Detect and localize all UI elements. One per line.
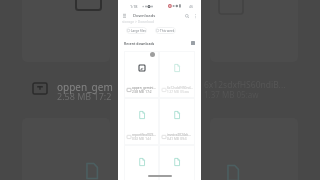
staticText: 0.92 MB 14:1 [132,137,152,141]
button[interactable]: This week [155,27,176,34]
button[interactable]: reportfinal0232... [124,98,159,145]
button[interactable]: notesdraft0x91... [124,145,159,180]
staticText: invoice2024xk... [167,133,191,137]
button[interactable]: summaryv2fin... [159,145,195,180]
staticText: This week [160,29,175,33]
staticText: oppen_gem [57,80,113,94]
button[interactable]: invoice2024xk... [159,98,195,145]
button[interactable]: More options [191,11,200,20]
button[interactable]: Large files [126,27,147,34]
button[interactable]: Change view [189,39,197,47]
button[interactable]: Search [182,11,191,20]
staticText: Large files [131,29,146,33]
staticText: 1:18 [130,4,138,9]
staticText: 0.41 MB 09:3 [167,137,187,141]
button[interactable]: 6x12sdxfH50nd... [159,51,195,98]
staticText: oppen_gemini_x... [132,86,157,90]
staticText: 2.58 MB 17:2 [57,90,112,102]
button[interactable]: Navigation menu [120,11,129,20]
staticText: 6x12sdxfHS60ndiB... [204,79,286,91]
staticText: 2.58 MB 17:2 [132,90,152,94]
button[interactable]: oppen_gemini_x... [124,51,159,98]
staticText: 6x12sdxfH50nd... [167,86,193,90]
staticText: 1.37 MB 05:aw [167,90,189,94]
staticText: Recent downloads [124,41,155,46]
staticText: reportfinal0232... [132,133,157,137]
staticText: Downloads [133,13,156,19]
staticText: 46 [189,4,194,9]
staticText: storage > Download [122,19,154,24]
